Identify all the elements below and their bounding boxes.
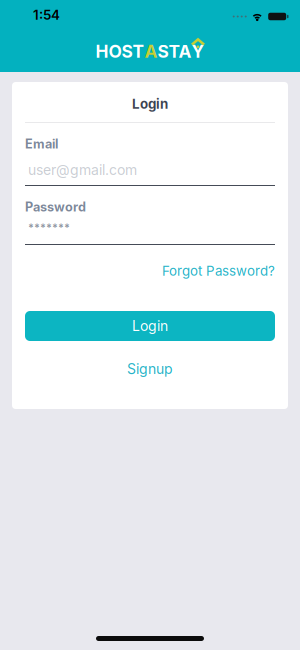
staticText: Y — [191, 41, 204, 62]
staticText: Password — [25, 199, 86, 215]
staticText: ******* — [28, 221, 70, 234]
staticText: Login — [132, 96, 168, 112]
staticText: A — [144, 41, 157, 62]
button[interactable]: Forgot Password? — [162, 263, 275, 279]
staticText: STA — [157, 41, 191, 62]
staticText: Login — [132, 317, 168, 334]
button[interactable]: Login — [25, 311, 275, 341]
button[interactable]: Signup — [25, 360, 275, 378]
staticText: Signup — [127, 360, 173, 377]
staticText: HOST — [95, 41, 144, 62]
staticText: Forgot Password? — [162, 263, 275, 279]
staticText: user@gmail.com — [28, 161, 137, 178]
staticText: Email — [25, 136, 58, 152]
staticText: 1:54 — [33, 7, 60, 23]
